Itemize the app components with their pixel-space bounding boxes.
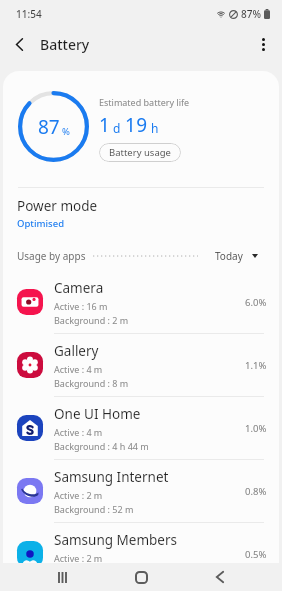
button[interactable]: Gallery xyxy=(3,334,279,396)
staticText: 19 xyxy=(125,112,148,138)
staticText: 1 xyxy=(99,112,110,138)
staticText: Battery usage xyxy=(109,146,171,159)
staticText: Active : 2 m xyxy=(54,489,103,501)
staticText: Camera xyxy=(54,279,104,297)
staticText: Samsung Members xyxy=(54,531,178,549)
staticText: Power mode xyxy=(17,197,98,215)
button[interactable]: Samsung Members xyxy=(3,523,279,563)
button[interactable]: Today xyxy=(215,249,258,263)
button[interactable]: Home xyxy=(116,563,166,591)
staticText: One UI Home xyxy=(54,405,141,423)
button[interactable]: Samsung Internet xyxy=(3,460,279,522)
staticText: Background : 4 h 44 m xyxy=(54,440,149,452)
button[interactable]: Recent apps xyxy=(37,563,87,591)
staticText: Active : 16 m xyxy=(54,300,108,312)
staticText: 87% xyxy=(241,7,261,21)
staticText: Background : 52 m xyxy=(54,503,134,515)
staticText: Usage by apps xyxy=(17,249,86,263)
staticText: 0.5% xyxy=(245,548,267,561)
button[interactable]: One UI Home xyxy=(3,397,279,459)
button[interactable]: Camera xyxy=(3,271,279,333)
staticText: Background : 2 m xyxy=(54,314,129,326)
staticText: Active : 4 m xyxy=(54,363,103,375)
staticText: 1.1% xyxy=(245,359,267,372)
button[interactable]: Back xyxy=(195,563,245,591)
button[interactable]: Power mode xyxy=(3,188,279,240)
staticText: 0.8% xyxy=(245,485,267,498)
staticText: Estimated battery life xyxy=(99,96,190,108)
staticText: Optimised xyxy=(17,217,65,230)
staticText: % xyxy=(62,125,70,138)
staticText: Battery xyxy=(40,35,90,54)
staticText: h xyxy=(151,120,159,136)
staticText: 6.0% xyxy=(245,296,267,309)
staticText: Samsung Internet xyxy=(54,468,169,486)
button[interactable]: More options xyxy=(244,29,282,59)
button[interactable]: Battery usage xyxy=(99,143,181,162)
staticText: d xyxy=(113,120,121,136)
staticText: Active : 4 m xyxy=(54,426,103,438)
staticText: 1.0% xyxy=(245,422,267,435)
button[interactable]: Navigate up xyxy=(0,29,38,59)
staticText: Background : 8 m xyxy=(54,377,129,389)
staticText: Today xyxy=(215,249,243,263)
staticText: Active : 2 m xyxy=(54,552,103,563)
staticText: 11:54 xyxy=(16,7,42,21)
staticText: Gallery xyxy=(54,342,99,360)
staticText: 87 xyxy=(38,114,60,140)
